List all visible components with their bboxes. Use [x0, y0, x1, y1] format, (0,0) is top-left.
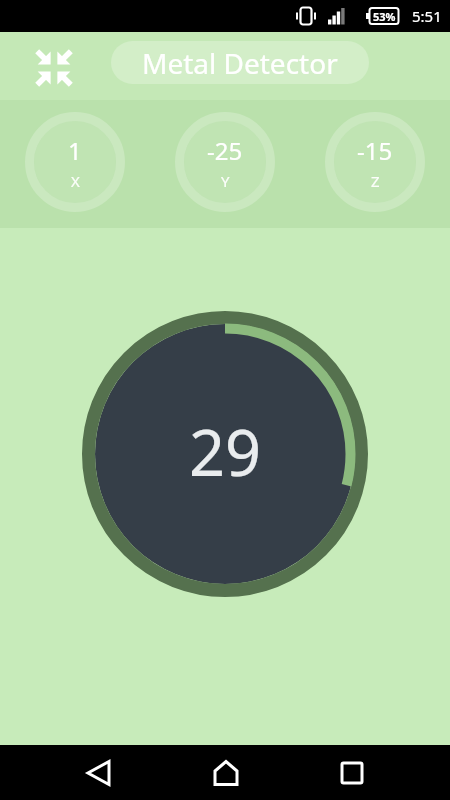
button[interactable]	[35, 49, 73, 87]
staticText: -25	[207, 134, 243, 167]
button[interactable]: -25	[175, 112, 275, 212]
staticText: X	[71, 171, 80, 191]
button[interactable]	[324, 745, 379, 800]
button[interactable]: Metal Detector	[111, 41, 369, 84]
staticText: 5:51	[412, 6, 442, 26]
button[interactable]	[198, 745, 253, 800]
staticText: 1	[68, 134, 82, 167]
staticText: Y	[221, 171, 230, 191]
staticText: Metal Detector	[142, 44, 338, 82]
staticText: 29	[189, 409, 262, 495]
staticText: -15	[357, 134, 393, 167]
button[interactable]	[71, 745, 126, 800]
button[interactable]: 29	[82, 311, 368, 597]
staticText: 53%	[373, 9, 396, 24]
staticText: Z	[371, 171, 380, 191]
button[interactable]: 1	[25, 112, 125, 212]
button[interactable]: -15	[325, 112, 425, 212]
